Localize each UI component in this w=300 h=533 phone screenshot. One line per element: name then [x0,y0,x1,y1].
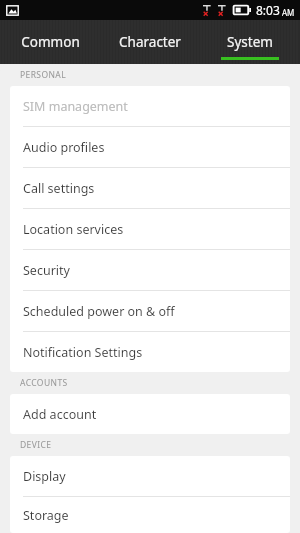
staticText: DEVICE [20,439,52,451]
staticText: PERSONAL [20,69,67,81]
staticText: System [227,33,273,51]
button[interactable]: Display [10,456,290,496]
staticText: Security [23,262,70,279]
staticText: Location services [23,221,124,238]
button[interactable]: Storage [10,497,290,533]
staticText: 8:03 [256,2,280,18]
button[interactable]: Location services [10,209,290,249]
button[interactable]: Notification Settings [10,332,290,372]
button[interactable]: Add account [10,394,290,434]
staticText: AM [282,7,295,18]
button[interactable]: Character [100,20,200,64]
staticText: Add account [23,406,97,423]
staticText: Call settings [23,180,95,197]
button[interactable]: Call settings [10,168,290,208]
staticText: Common [21,33,80,51]
staticText: Audio profiles [23,139,105,156]
button[interactable]: Audio profiles [10,127,290,167]
staticText: Scheduled power on & off [23,303,175,320]
staticText: Storage [23,507,69,524]
button[interactable]: System [200,20,300,64]
staticText: Character [119,33,181,51]
staticText: Notification Settings [23,344,143,361]
button[interactable]: SIM management [10,86,290,126]
button[interactable]: Security [10,250,290,290]
staticText: ACCOUNTS [20,377,68,389]
button[interactable]: Scheduled power on & off [10,291,290,331]
staticText: SIM management [23,98,128,115]
staticText: Display [23,468,66,485]
button[interactable]: Common [0,20,100,64]
